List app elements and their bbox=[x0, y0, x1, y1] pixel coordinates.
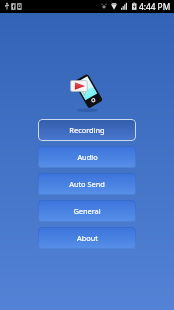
staticText: Auto Send bbox=[69, 179, 105, 189]
button[interactable]: About bbox=[38, 227, 136, 249]
button[interactable]: Audio bbox=[38, 146, 136, 168]
staticText: Recording bbox=[69, 125, 105, 135]
button[interactable]: Auto Send bbox=[38, 173, 136, 195]
staticText: About bbox=[77, 233, 98, 243]
staticText: 4:44 PM bbox=[139, 1, 171, 12]
staticText: Audio bbox=[77, 152, 98, 162]
staticText: General bbox=[73, 206, 101, 216]
button[interactable]: Recording bbox=[38, 119, 136, 141]
button[interactable]: General bbox=[38, 200, 136, 222]
